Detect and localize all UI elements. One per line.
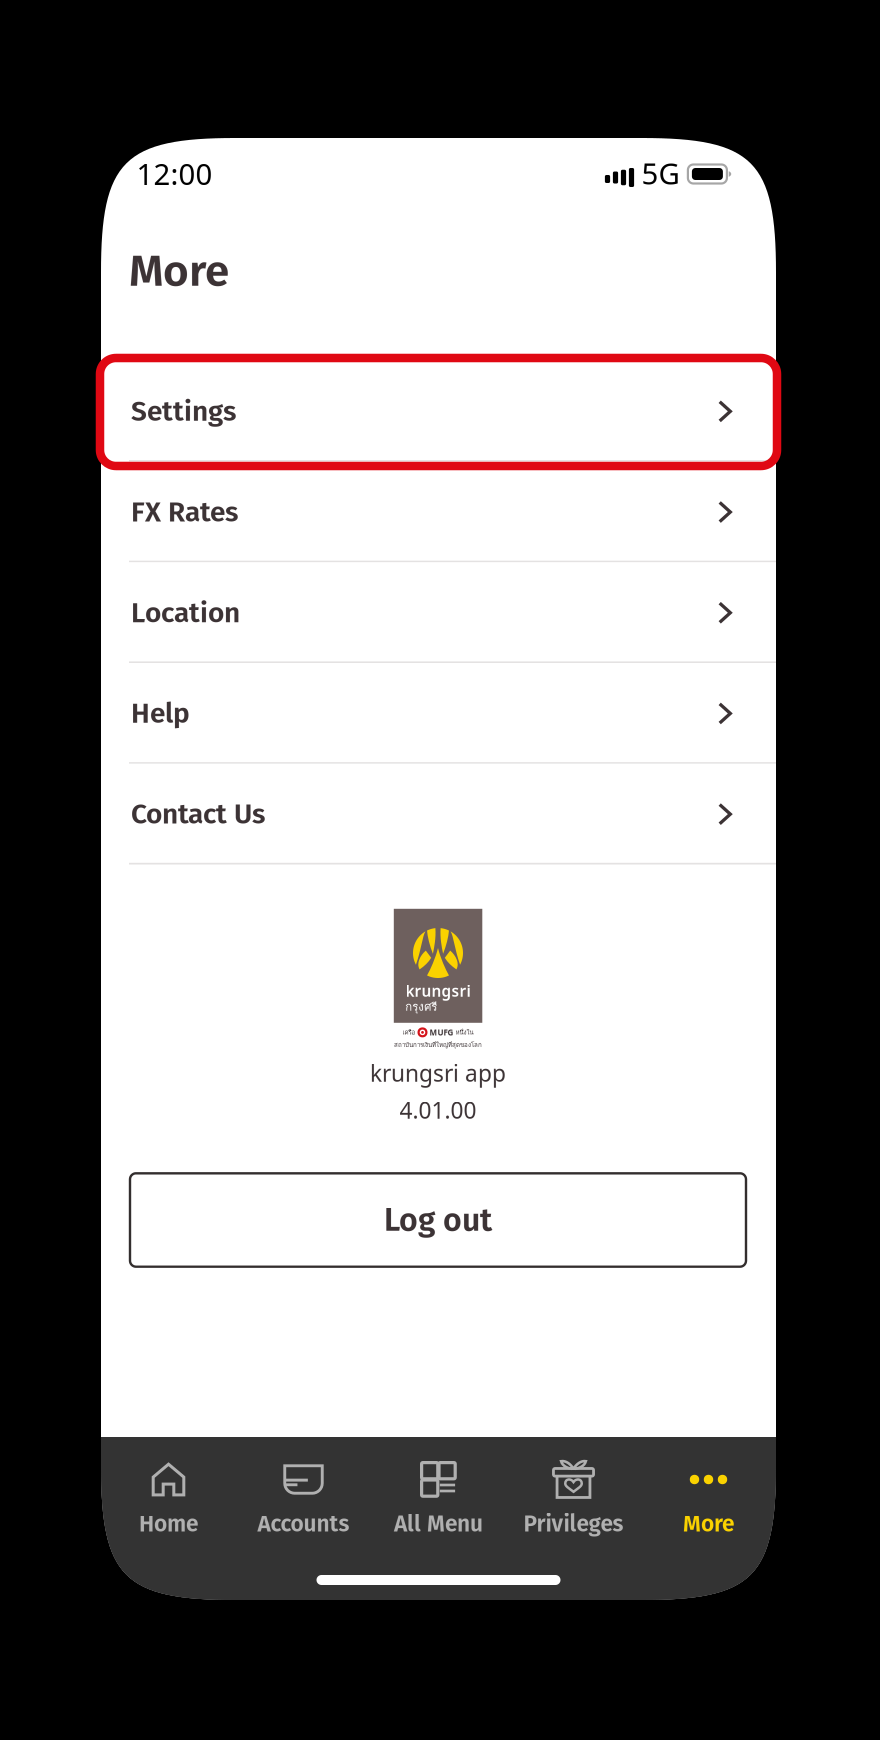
staticText: หนึ่งใน bbox=[455, 1027, 473, 1037]
button[interactable]: All Menu bbox=[371, 1437, 506, 1600]
staticText: 4.01.00 bbox=[399, 1095, 476, 1125]
staticText: Privileges bbox=[523, 1510, 623, 1538]
button[interactable]: Accounts bbox=[236, 1437, 371, 1600]
button[interactable]: Log out bbox=[130, 1173, 746, 1267]
button[interactable]: Privileges bbox=[506, 1437, 641, 1600]
staticText: All Menu bbox=[394, 1510, 483, 1538]
button[interactable]: Home bbox=[101, 1437, 236, 1600]
button[interactable]: FX Rates bbox=[101, 462, 776, 562]
staticText: Accounts bbox=[257, 1510, 349, 1538]
button[interactable]: Settings bbox=[101, 361, 776, 462]
staticText: krungsri bbox=[405, 980, 470, 1001]
staticText: กรุงศรี bbox=[405, 998, 437, 1016]
staticText: 5G bbox=[641, 153, 679, 193]
button[interactable]: Contact Us bbox=[101, 764, 776, 864]
staticText: Contact Us bbox=[131, 797, 265, 831]
staticText: MUFG bbox=[429, 1027, 453, 1038]
staticText: Help bbox=[131, 697, 190, 730]
button[interactable]: More bbox=[641, 1437, 776, 1600]
staticText: More bbox=[129, 245, 229, 297]
staticText: More bbox=[683, 1510, 734, 1538]
staticText: Log out bbox=[384, 1201, 492, 1239]
staticText: krungsri app bbox=[370, 1058, 506, 1088]
staticText: 12:00 bbox=[136, 153, 212, 193]
button[interactable]: Location bbox=[101, 562, 776, 663]
staticText: Location bbox=[131, 596, 240, 630]
staticText: เครือ bbox=[402, 1027, 415, 1037]
staticText: Home bbox=[139, 1510, 198, 1538]
staticText: FX Rates bbox=[131, 495, 238, 529]
button[interactable]: Help bbox=[101, 663, 776, 764]
staticText: Settings bbox=[131, 395, 236, 428]
staticText: สถาบันการเงินที่ใหญ่ที่สุดของโลก bbox=[394, 1040, 482, 1050]
